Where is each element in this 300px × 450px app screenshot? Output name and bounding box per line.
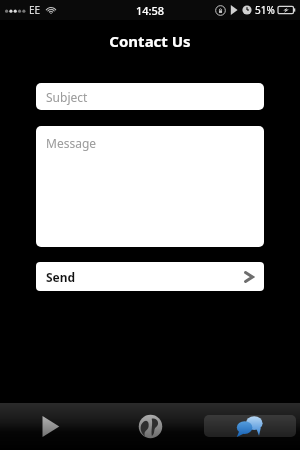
staticText: 51% — [255, 3, 275, 17]
button[interactable]: Media — [0, 403, 100, 450]
button[interactable]: Message — [36, 126, 264, 247]
button[interactable]: Send — [36, 262, 264, 291]
staticText: Send — [46, 269, 76, 285]
staticText: Subject — [46, 89, 88, 105]
staticText: Contact Us — [109, 31, 191, 51]
staticText: Message — [46, 135, 97, 151]
button[interactable]: Contact Us — [200, 403, 300, 450]
button[interactable]: Web — [100, 403, 200, 450]
button[interactable]: Subject — [36, 83, 264, 110]
staticText: EE — [29, 3, 41, 17]
staticText: 14:58 — [136, 3, 165, 18]
